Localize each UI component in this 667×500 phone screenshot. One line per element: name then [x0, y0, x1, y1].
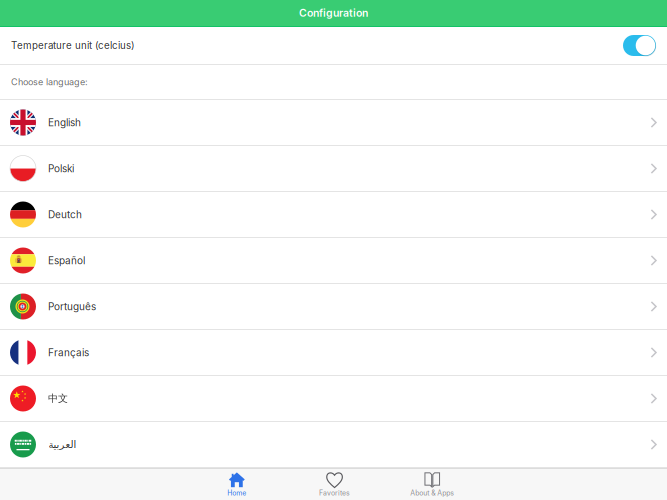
staticText: Deutch [48, 208, 82, 221]
staticText: Français [48, 346, 89, 359]
staticText: Choose language: [11, 76, 88, 87]
button[interactable]: Home [188, 468, 286, 500]
staticText: Favorites [319, 489, 350, 497]
staticText: English [48, 116, 81, 129]
button[interactable]: Français [0, 330, 667, 376]
button[interactable]: Polski [0, 146, 667, 192]
button[interactable]: 中文 [0, 376, 667, 422]
button[interactable]: العربية [0, 422, 667, 468]
button[interactable]: English [0, 100, 667, 146]
staticText: العربية [48, 439, 76, 450]
staticText: Español [48, 254, 85, 267]
staticText: Configuration [299, 7, 368, 19]
button[interactable]: Favorites [286, 468, 383, 500]
button[interactable]: Temperature unit toggle [623, 35, 656, 56]
staticText: Português [48, 300, 96, 313]
staticText: Polski [48, 162, 74, 175]
button[interactable]: Português [0, 284, 667, 330]
button[interactable]: Deutch [0, 192, 667, 238]
button[interactable]: About & Apps [383, 468, 481, 500]
staticText: Temperature unit (celcius) [11, 40, 135, 51]
button[interactable]: Español [0, 238, 667, 284]
staticText: About & Apps [410, 489, 454, 497]
staticText: 中文 [48, 392, 68, 405]
staticText: Home [227, 489, 246, 497]
